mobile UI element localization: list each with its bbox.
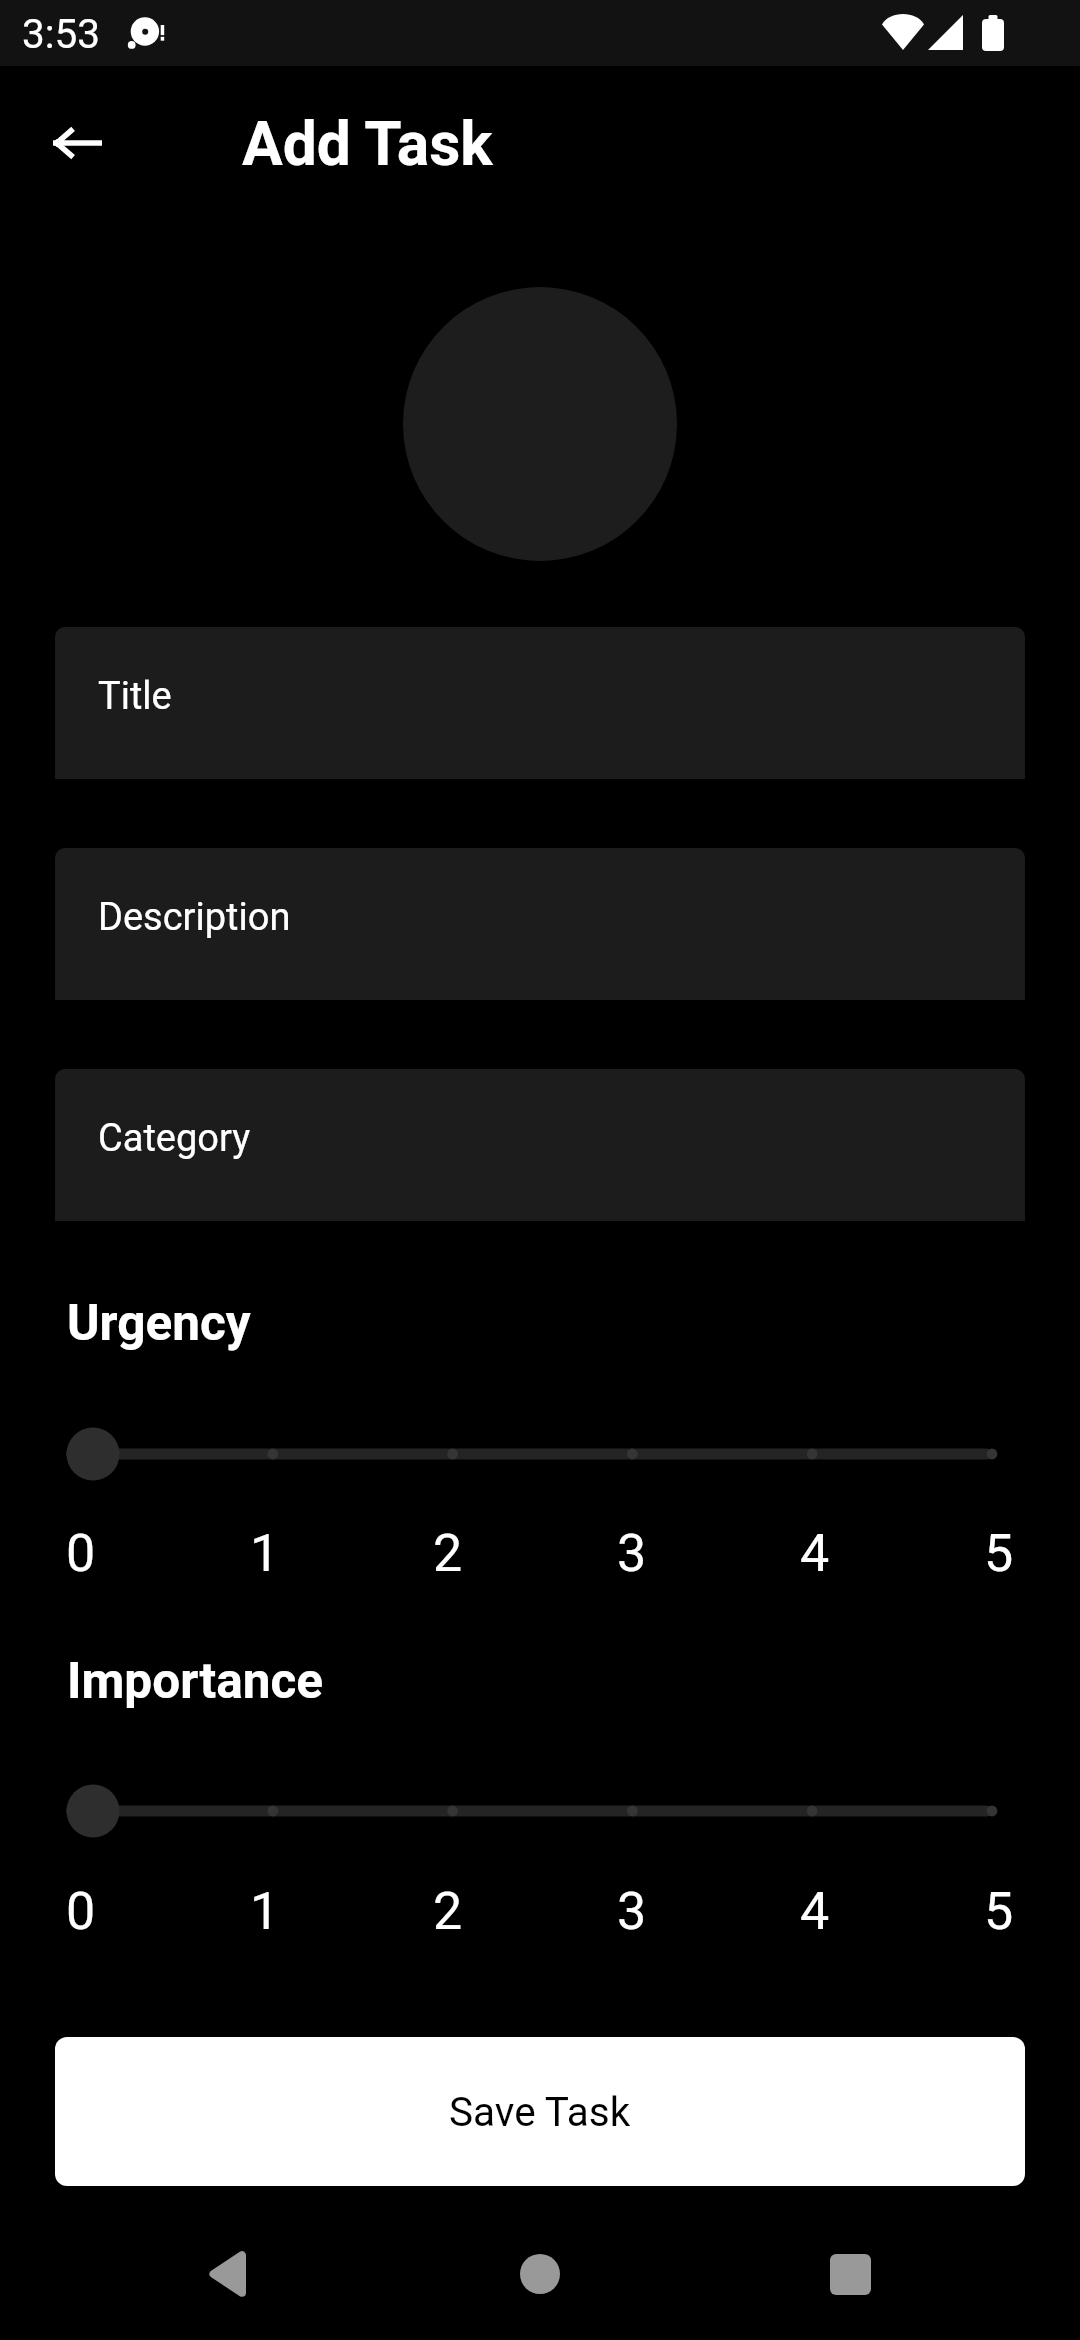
button[interactable]: Urgency level [0,1414,1080,1494]
button[interactable]: Importance level [0,1771,1080,1851]
staticText: 1 [250,1881,280,1942]
staticText: Category [98,1116,251,1161]
staticText: Save Task [449,2088,631,2135]
staticText: 5 [984,1523,1014,1584]
staticText: 2 [433,1881,463,1942]
staticText: 4 [800,1881,830,1942]
staticText: Title [98,674,172,719]
staticText: 5 [984,1881,1014,1942]
button[interactable]: Back [22,88,132,198]
staticText: 2 [433,1523,463,1584]
button[interactable]: Description [55,848,1025,1000]
button[interactable]: Save Task [55,2037,1025,2186]
staticText: 0 [66,1881,96,1942]
button[interactable]: Recent apps [790,2219,910,2329]
staticText: Add Task [242,109,493,180]
staticText: 3 [617,1523,647,1584]
button[interactable]: Add photo [403,287,677,561]
button[interactable]: Category [55,1069,1025,1221]
staticText: 0 [66,1523,96,1584]
staticText: 4 [800,1523,830,1584]
button[interactable]: Back [166,2219,286,2329]
staticText: 1 [250,1523,280,1584]
staticText: Description [98,895,291,940]
staticText: Importance [67,1652,324,1710]
staticText: 3 [617,1881,647,1942]
staticText: Urgency [67,1294,251,1352]
button[interactable]: Home [480,2219,600,2329]
staticText: 3:53 [22,10,101,57]
button[interactable]: Title [55,627,1025,779]
